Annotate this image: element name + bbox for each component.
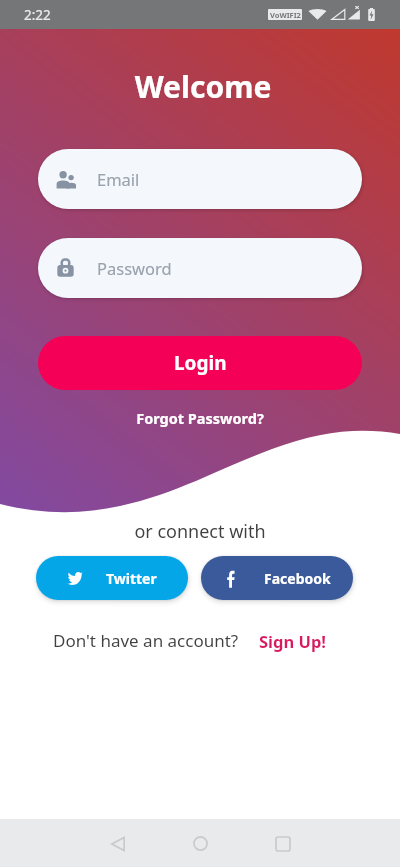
staticText: Facebook <box>264 569 331 588</box>
staticText: 2:22 <box>24 6 51 24</box>
button[interactable]: Login <box>38 336 362 390</box>
button[interactable]: Home <box>178 821 223 866</box>
staticText: VoWIFI2 <box>270 10 301 20</box>
staticText: Email <box>97 168 140 190</box>
button[interactable]: Recent apps <box>260 821 305 866</box>
staticText: Login <box>174 350 227 376</box>
button[interactable]: Forgot Password? <box>0 408 400 428</box>
button[interactable]: Twitter <box>36 556 188 600</box>
button[interactable]: Back <box>95 821 140 866</box>
staticText: Welcome <box>3 66 400 107</box>
button[interactable]: Email <box>38 149 362 209</box>
button[interactable]: Facebook <box>201 556 353 600</box>
button[interactable]: Password <box>38 238 362 298</box>
staticText: or connect with <box>0 519 400 544</box>
button[interactable]: Sign Up! <box>259 630 327 652</box>
staticText: Twitter <box>106 569 157 588</box>
staticText: Don't have an account? <box>53 629 239 652</box>
staticText: Password <box>97 257 172 279</box>
